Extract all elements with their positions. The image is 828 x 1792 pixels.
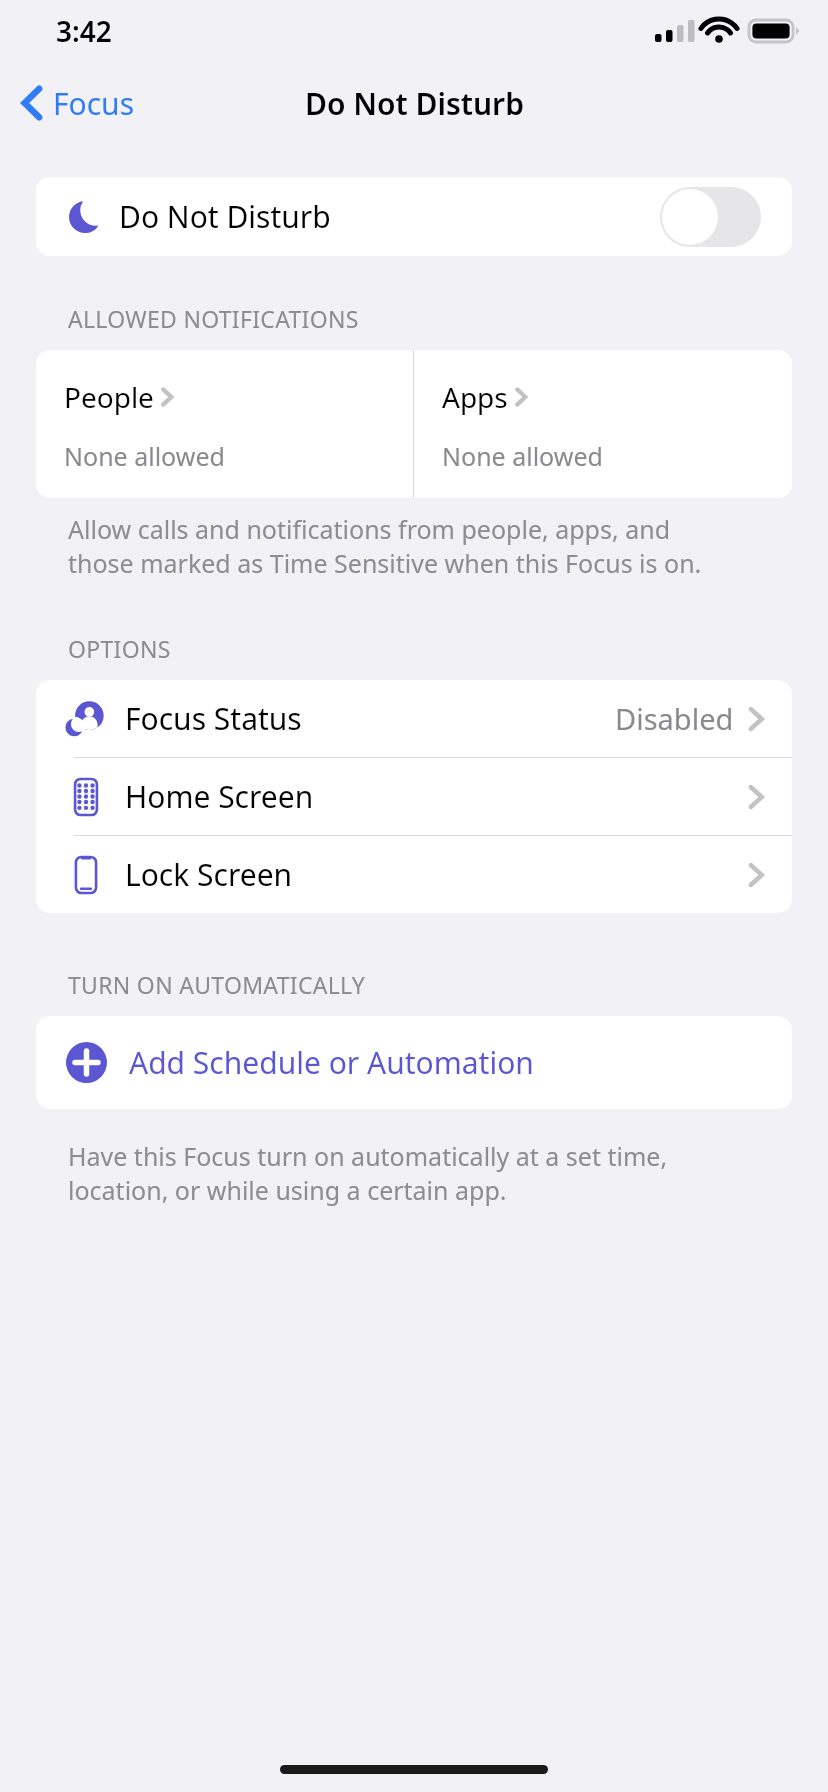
staticText: None allowed (64, 439, 225, 473)
staticText: 3:42 (56, 12, 112, 50)
staticText: People (64, 378, 154, 416)
button[interactable]: Add Schedule or Automation (36, 1016, 792, 1109)
staticText: Apps (442, 378, 508, 416)
staticText: Allow calls and notifications from peopl… (68, 512, 702, 580)
staticText: Focus Status (125, 698, 302, 739)
button[interactable]: Focus (0, 62, 149, 144)
staticText: None allowed (442, 439, 603, 473)
button[interactable]: Home Screen (36, 758, 792, 835)
staticText: Disabled (615, 699, 734, 738)
button[interactable]: Lock Screen (36, 836, 792, 913)
button[interactable]: Apps (414, 350, 792, 498)
button[interactable]: Do Not Disturb toggle (660, 187, 761, 247)
staticText: TURN ON AUTOMATICALLY (68, 969, 366, 1000)
staticText: Do Not Disturb (119, 196, 331, 237)
staticText: ALLOWED NOTIFICATIONS (68, 303, 359, 334)
staticText: Home Screen (125, 776, 314, 817)
staticText: Do Not Disturb (305, 83, 524, 124)
button[interactable]: Do Not Disturb (36, 177, 792, 256)
staticText: Lock Screen (125, 854, 293, 895)
staticText: Have this Focus turn on automatically at… (68, 1139, 668, 1207)
button[interactable]: People (36, 350, 413, 498)
button[interactable]: Focus Status (36, 680, 792, 757)
staticText: OPTIONS (68, 633, 171, 664)
staticText: Add Schedule or Automation (129, 1042, 534, 1083)
staticText: Focus (53, 83, 135, 124)
